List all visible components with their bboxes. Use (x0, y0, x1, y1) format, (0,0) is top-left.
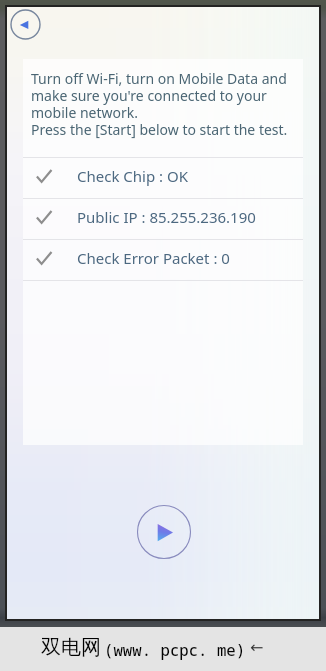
staticText: 双电网 (41, 635, 101, 660)
button[interactable]: Check Error Packet : 0 (23, 240, 303, 280)
staticText: Public IP : 85.255.236.190 (77, 207, 256, 227)
staticText: (www. pcpc. me) (104, 639, 246, 660)
button[interactable]: Public IP : 85.255.236.190 (23, 199, 303, 239)
staticText: Turn off Wi-Fi, turn on Mobile Data and … (31, 71, 297, 139)
button[interactable]: Check Chip : OK (23, 158, 303, 198)
staticText: Check Chip : OK (77, 166, 188, 186)
button[interactable]: Start test (135, 503, 193, 561)
staticText: ← (250, 638, 264, 657)
button[interactable]: Back (9, 8, 42, 41)
staticText: Check Error Packet : 0 (77, 248, 230, 268)
